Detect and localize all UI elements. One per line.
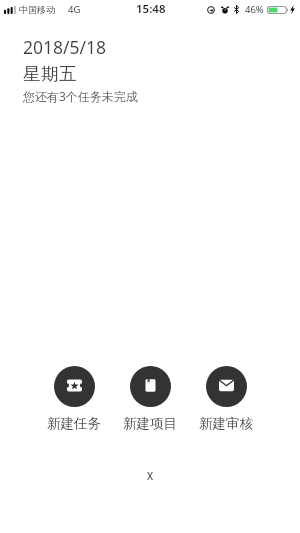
staticText: 新建项目 — [123, 415, 177, 432]
button[interactable]: 新建项目 — [112, 366, 188, 432]
staticText: 星期五 — [23, 63, 78, 85]
staticText: 46% — [245, 3, 264, 16]
staticText: 15:48 — [136, 1, 166, 17]
staticText: 中国移动 — [19, 4, 55, 15]
staticText: 您还有3个任务未完成 — [23, 88, 138, 104]
button[interactable]: 新建审核 — [188, 366, 264, 432]
staticText: 新建任务 — [47, 415, 101, 432]
staticText: 4G — [68, 3, 81, 16]
button[interactable]: Close — [136, 462, 164, 490]
staticText: 2018/5/18 — [23, 35, 107, 59]
staticText: 新建审核 — [199, 415, 253, 432]
staticText: X — [147, 469, 154, 483]
button[interactable]: 新建任务 — [36, 366, 112, 432]
